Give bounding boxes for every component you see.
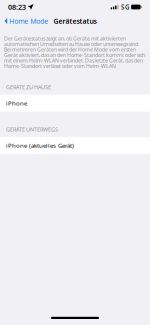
staticText: Home Mode bbox=[9, 16, 48, 26]
staticText: iPhone (aktuelles Gerät) bbox=[6, 141, 74, 149]
button[interactable]: iPhone bbox=[0, 95, 150, 112]
button[interactable]: Home Mode bbox=[0, 14, 48, 28]
staticText: GERÄTE ZU HAUSE bbox=[6, 83, 51, 91]
staticText: GERÄTE UNTERWEGS bbox=[6, 126, 58, 133]
staticText: 5G bbox=[121, 3, 129, 11]
button[interactable]: iPhone (aktuelles Gerät) bbox=[0, 137, 150, 154]
staticText: 08:23 bbox=[8, 2, 26, 12]
staticText: Gerätestatus bbox=[53, 16, 96, 26]
staticText: iPhone bbox=[6, 99, 27, 107]
staticText: Der Gerätestatus zeigt an, ob Geräte mit… bbox=[4, 35, 145, 69]
